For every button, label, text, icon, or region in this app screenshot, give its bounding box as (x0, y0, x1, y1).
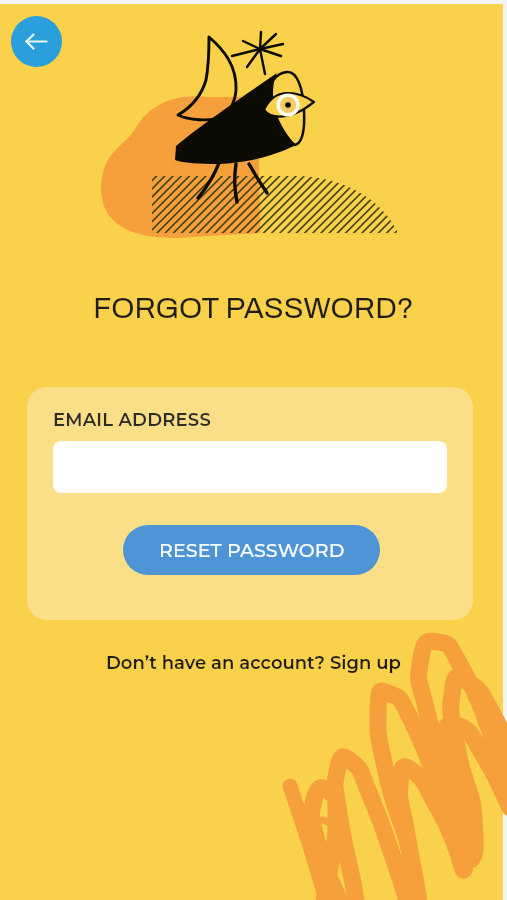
button[interactable] (53, 441, 447, 493)
staticText: EMAIL ADDRESS (53, 409, 211, 431)
staticText: FORGOT PASSWORD? (0, 292, 507, 324)
staticText: Don’t have an account? Sign up (106, 652, 401, 674)
button[interactable]: Back (11, 16, 62, 67)
button[interactable]: Don’t have an account? Sign up (0, 652, 507, 674)
staticText: RESET PASSWORD (159, 539, 345, 562)
button[interactable]: RESET PASSWORD (123, 525, 380, 575)
